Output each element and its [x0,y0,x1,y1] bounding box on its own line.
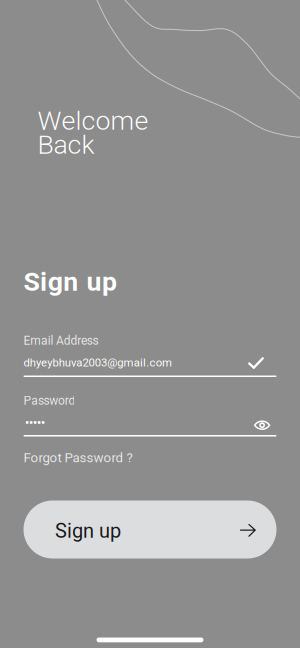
staticText: Sign up [55,519,121,543]
button[interactable]: Forgot Password ? [23,450,132,466]
staticText: Password [23,394,75,408]
staticText: Email Address [23,333,98,348]
staticText: Back [37,129,94,160]
staticText: Welcome [37,105,148,136]
staticText: Sign up [23,266,117,297]
staticText: dhyeybhuva2003@gmail.com [23,356,172,369]
button[interactable]: Sign up [23,500,276,558]
staticText: Forgot Password ? [23,450,132,466]
